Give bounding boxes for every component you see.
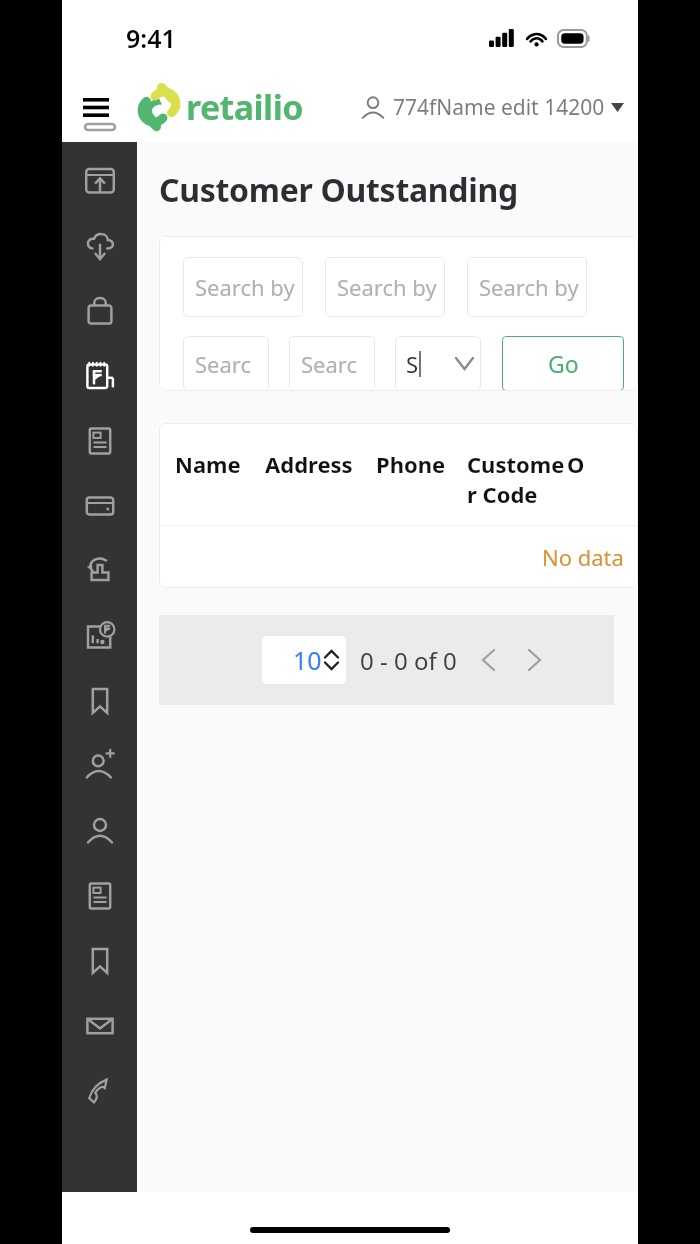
staticText: Search by [195, 272, 295, 302]
button[interactable]: Customers [62, 798, 137, 863]
button[interactable]: Add customer [62, 733, 137, 798]
staticText: Search by [337, 272, 437, 302]
staticText: Name [175, 449, 241, 479]
button[interactable]: Returns [62, 538, 137, 603]
button[interactable]: Select option [395, 336, 481, 391]
staticText: S [406, 349, 419, 379]
button[interactable]: Bookmarks [62, 668, 137, 733]
button[interactable]: Search by [467, 257, 587, 317]
staticText: Searc [195, 349, 252, 379]
staticText: Customer Code [467, 449, 567, 510]
staticText: Customer Outstanding [159, 168, 518, 212]
button[interactable]: Orders [62, 278, 137, 343]
button[interactable]: Outstanding [62, 603, 137, 668]
staticText: 9:41 [126, 21, 176, 55]
staticText: No data [542, 542, 624, 572]
button[interactable]: Call [62, 1058, 137, 1123]
staticText: Address [265, 449, 353, 479]
button[interactable]: Search by [183, 257, 303, 317]
button[interactable]: Previous page [471, 643, 505, 677]
button[interactable]: Next page [517, 643, 551, 677]
button[interactable]: Mail [62, 993, 137, 1058]
button[interactable]: Searc [183, 336, 269, 391]
staticText: retailio [186, 84, 303, 130]
staticText: Go [548, 348, 579, 379]
button[interactable]: Wallet [62, 473, 137, 538]
button[interactable]: Ledger [62, 863, 137, 928]
button[interactable]: Saved [62, 928, 137, 993]
staticText: 10 [293, 643, 322, 677]
button[interactable]: Download [62, 213, 137, 278]
button[interactable]: Searc [289, 336, 375, 391]
button[interactable]: Search by [325, 257, 445, 317]
staticText: Phone [376, 449, 446, 479]
button[interactable]: Invoices [62, 343, 137, 408]
button[interactable]: Upload [62, 148, 137, 213]
staticText: O [567, 449, 585, 479]
staticText: Searc [301, 349, 358, 379]
button[interactable]: 774fName edit 14200 [356, 87, 628, 128]
staticText: 774fName edit 14200 [393, 93, 605, 122]
button[interactable]: 10 [262, 636, 346, 684]
button[interactable]: Go [502, 336, 624, 391]
button[interactable]: Reports [62, 408, 137, 473]
staticText: 0 - 0 of 0 [360, 644, 457, 677]
staticText: Search by [479, 272, 579, 302]
button[interactable]: Menu [74, 85, 118, 129]
